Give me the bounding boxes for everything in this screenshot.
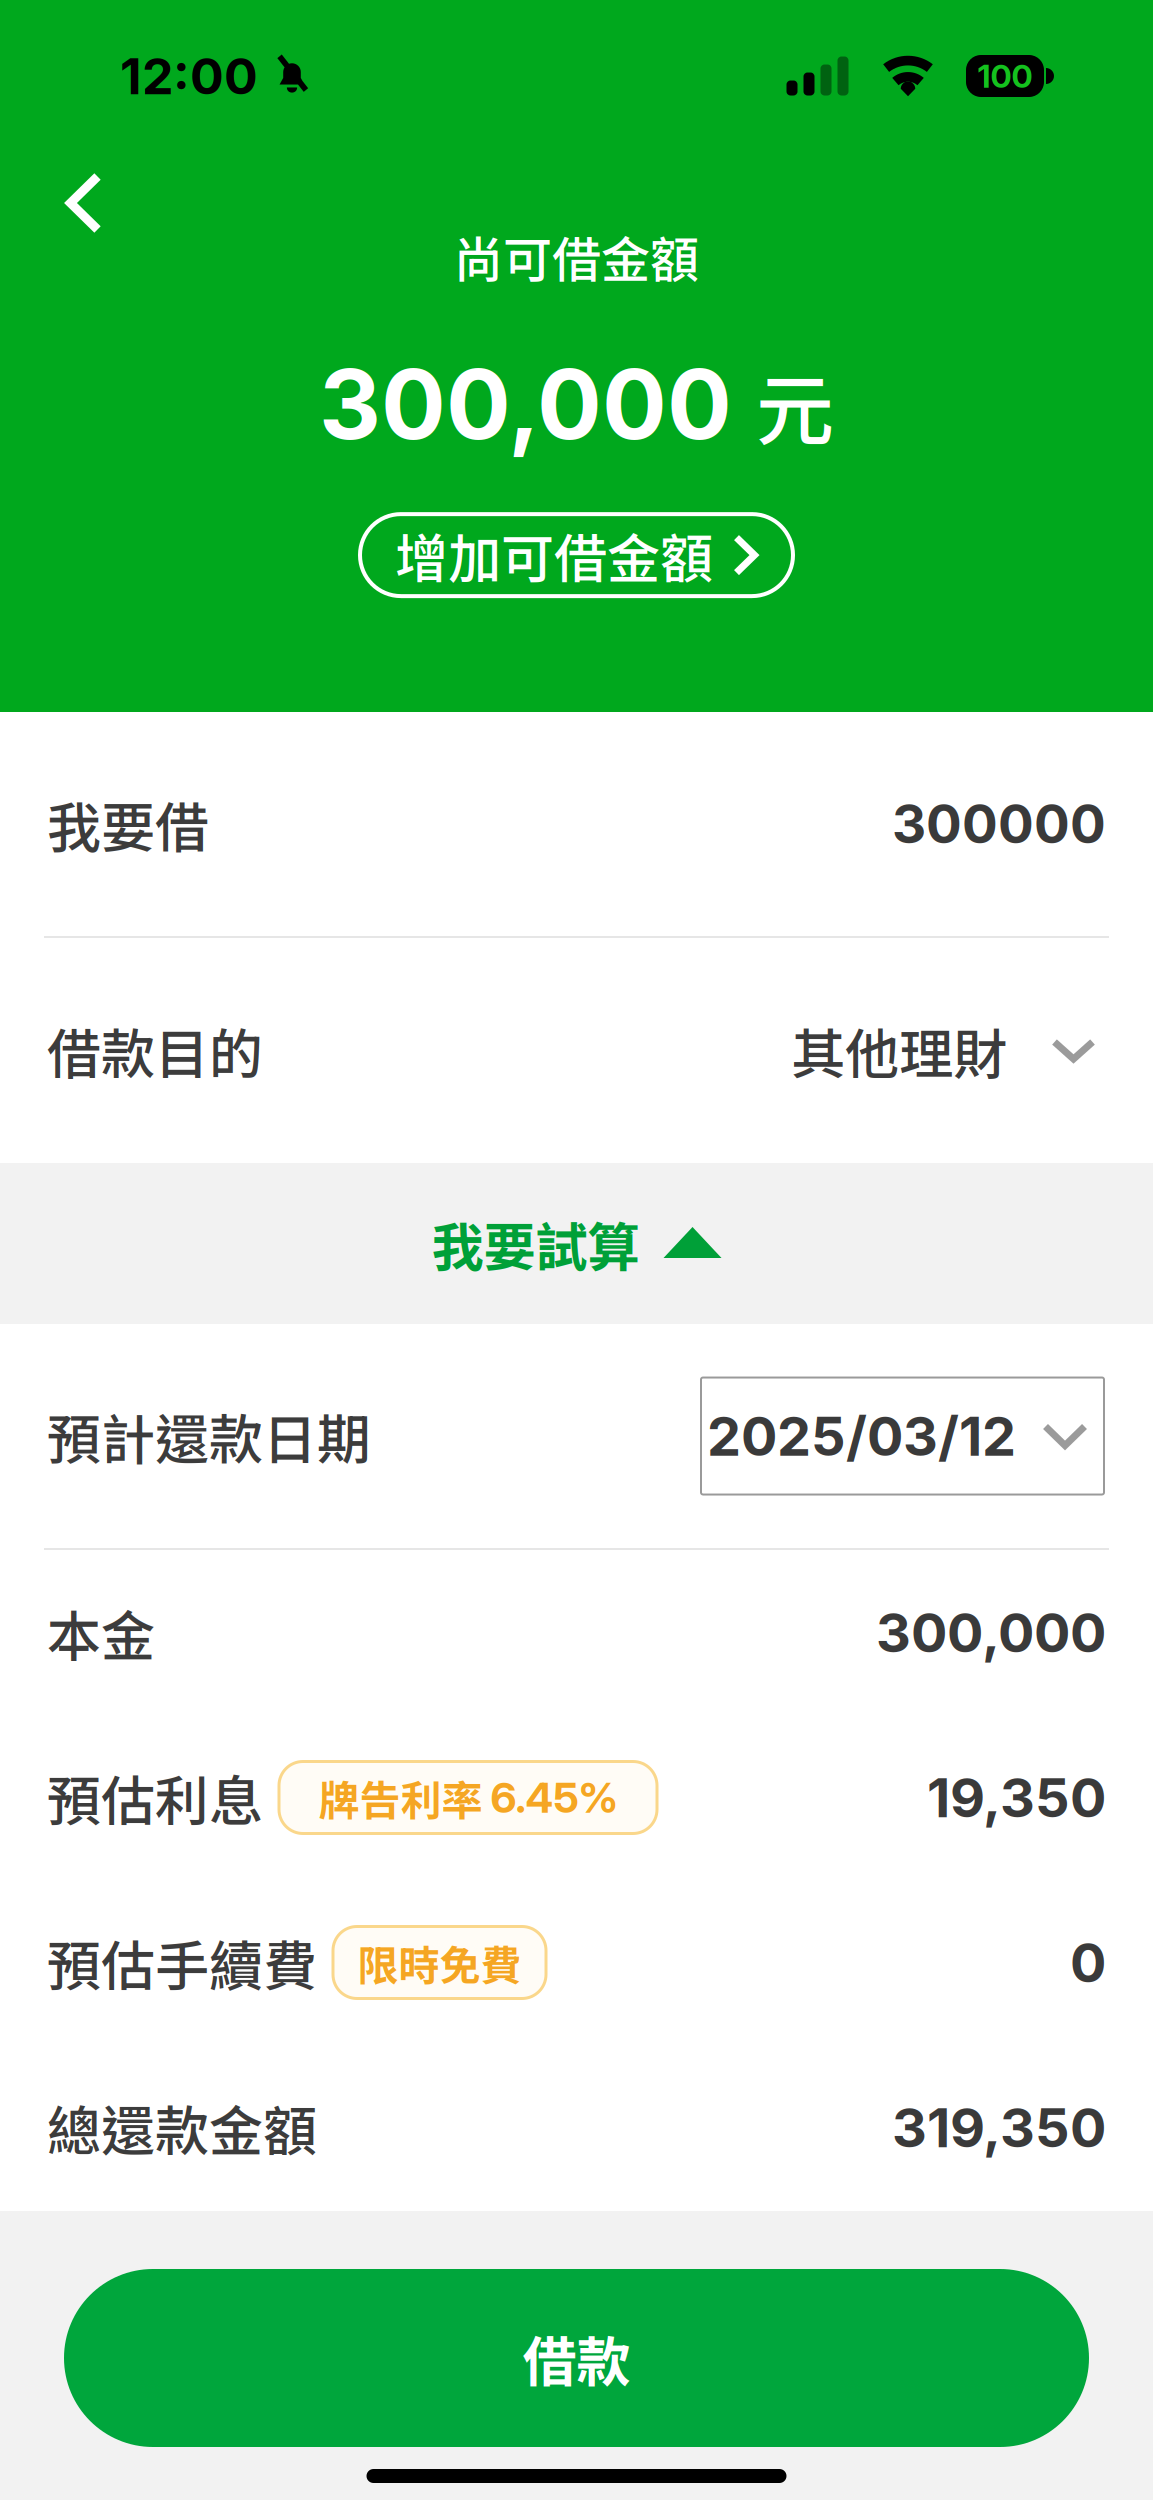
- staticText: 2025/03/12: [707, 1403, 1016, 1469]
- staticText: 我要試算: [431, 1206, 639, 1281]
- staticText: 300000: [892, 792, 1106, 856]
- staticText: 我要借: [47, 785, 209, 863]
- staticText: 6.45%: [490, 1772, 617, 1823]
- button[interactable]: 借款: [64, 2269, 1089, 2447]
- staticText: 319,350: [892, 2095, 1106, 2160]
- staticText: 300,000: [876, 1600, 1106, 1665]
- staticText: 元: [756, 348, 834, 461]
- staticText: 增加可借金額: [395, 517, 713, 593]
- staticText: 限時免費: [357, 1933, 521, 1992]
- staticText: 100: [977, 57, 1032, 95]
- staticText: 借款: [522, 2319, 630, 2397]
- staticText: 牌告利率: [318, 1768, 482, 1827]
- staticText: 借款目的: [47, 1011, 263, 1090]
- staticText: 預估手續費: [47, 1923, 317, 2002]
- button[interactable]: Back: [40, 146, 128, 260]
- button[interactable]: 2025/03/12: [701, 1377, 1104, 1494]
- staticText: 總還款金額: [47, 2088, 317, 2167]
- staticText: 19,350: [927, 1765, 1106, 1830]
- staticText: 其他理財: [791, 1011, 1007, 1090]
- staticText: 0: [1070, 1930, 1106, 1995]
- staticText: 本金: [47, 1593, 155, 1672]
- staticText: 尚可借金額: [454, 221, 699, 292]
- staticText: 預計還款日期: [47, 1397, 371, 1475]
- button[interactable]: 增加可借金額: [360, 514, 793, 596]
- staticText: 預估利息: [47, 1758, 263, 1837]
- button[interactable]: 我要試算: [0, 1163, 1153, 1324]
- button[interactable]: 我要借: [0, 712, 1153, 936]
- staticText: 12:00: [120, 46, 258, 106]
- staticText: 300,000: [319, 346, 732, 462]
- button[interactable]: 借款目的: [0, 938, 1153, 1163]
